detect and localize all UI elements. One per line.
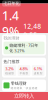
staticText: 元 bbox=[42, 34, 46, 39]
staticText: 6.1% bbox=[34, 66, 43, 71]
staticText: 立即转入 bbox=[14, 93, 34, 99]
staticText: 进取型 bbox=[34, 72, 43, 75]
staticText: 4.8% bbox=[19, 66, 28, 71]
staticText: 3.2% bbox=[5, 66, 14, 71]
staticText: 1.49% bbox=[2, 8, 19, 39]
button[interactable]: 立即转入 bbox=[0, 92, 48, 100]
staticText: 稳健增利 · 7日年化 3.21% bbox=[9, 43, 38, 53]
staticText: 总金额(元) bbox=[28, 40, 46, 45]
staticText: 随存随取 · 收益稳健 bbox=[11, 86, 38, 90]
staticText: 平衡型 bbox=[19, 72, 28, 75]
staticText: 稳健型 bbox=[5, 72, 14, 75]
staticText: 七日年化 bbox=[3, 1, 19, 6]
staticText: 热门推荐 bbox=[3, 59, 19, 64]
staticText: 12,480.55 bbox=[23, 22, 41, 39]
staticText: 我的理财 bbox=[3, 36, 19, 41]
staticText: 零钱理财 bbox=[11, 81, 27, 86]
staticText: 昨日收益 bbox=[2, 40, 18, 45]
